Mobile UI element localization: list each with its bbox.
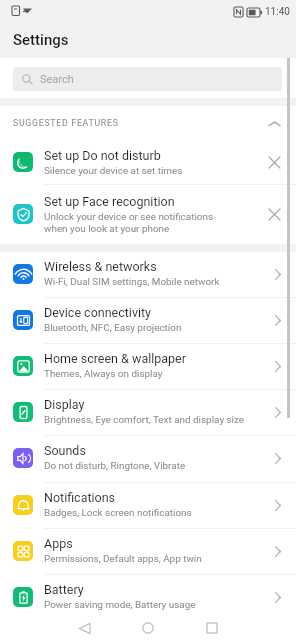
staticText: Unlock your device or see notifications [44,211,214,223]
staticText: Sounds [44,443,86,458]
staticText: Badges, Lock screen notifications [44,507,192,519]
button[interactable]: Set up Face recognition [0,184,296,244]
staticText: Set up Do not disturb [44,148,161,163]
staticText: Apps [44,536,73,551]
button[interactable]: Home screen & wallpaper [0,343,296,389]
button[interactable]: Search [13,67,282,91]
button[interactable]: Set up Do not disturb [0,140,296,184]
staticText: Home screen & wallpaper [44,351,186,366]
staticText: Wireless & networks [44,259,157,274]
button[interactable]: Recent apps [200,616,224,640]
button[interactable]: Dismiss Set up Face recognition [262,202,286,226]
staticText: Notifications [44,490,116,505]
button[interactable]: Collapse suggested features [262,112,286,136]
staticText: Power saving mode, Battery usage [44,599,196,611]
staticText: Wi-Fi, Dual SIM settings, Mobile network [44,276,220,288]
button[interactable]: Battery [0,574,296,620]
staticText: Display [44,397,85,412]
staticText: Do not disturb, Ringtone, Vibrate [44,460,186,472]
staticText: SUGGESTED FEATURES [13,118,119,128]
staticText: Brightness, Eye comfort, Text and displa… [44,414,245,426]
button[interactable]: Apps [0,528,296,574]
staticText: Permissions, Default apps, App twin [44,553,202,565]
button[interactable]: Notifications [0,482,296,528]
staticText: Settings [13,31,69,49]
staticText: Bluetooth, NFC, Easy projection [44,322,182,334]
staticText: Silence your device at set times [44,165,183,177]
staticText: Device connectivity [44,305,151,320]
button[interactable]: Back [72,616,96,640]
button[interactable]: Sounds [0,435,296,481]
button[interactable]: Device connectivity [0,297,296,343]
button[interactable]: Home [136,616,160,640]
staticText: Set up Face recognition [44,194,175,209]
staticText: 11:40 [265,6,290,18]
staticText: Themes, Always on display [44,368,163,380]
button[interactable]: Wireless & networks [0,251,296,297]
staticText: Search [40,73,74,86]
staticText: when you look at your phone [44,223,170,235]
button[interactable]: Dismiss Set up Do not disturb [262,150,286,174]
button[interactable]: Display [0,389,296,435]
staticText: Battery [44,582,84,597]
